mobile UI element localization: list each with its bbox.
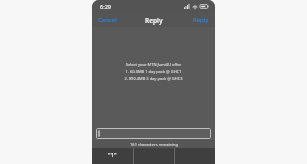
staticText: 1. 60.0MB 1 day pack @ GHC1 (98, 69, 209, 74)
staticText: Select your MTN Jumi4U offer (98, 62, 209, 67)
button[interactable]: Cancel (92, 13, 123, 27)
button[interactable]: Message input (96, 128, 211, 139)
staticText: 2. 890.4MB 3 day pack @ GHC3 (98, 76, 209, 81)
staticText: Reply (145, 16, 163, 25)
staticText: 6:29 (100, 3, 111, 10)
staticText: Reply (193, 16, 209, 24)
staticText: "1" (108, 151, 117, 159)
staticText: 161 characters remaining (130, 142, 178, 147)
staticText: Cancel (98, 16, 117, 24)
button[interactable]: Reply (187, 13, 215, 27)
button[interactable]: "1" (92, 148, 133, 164)
